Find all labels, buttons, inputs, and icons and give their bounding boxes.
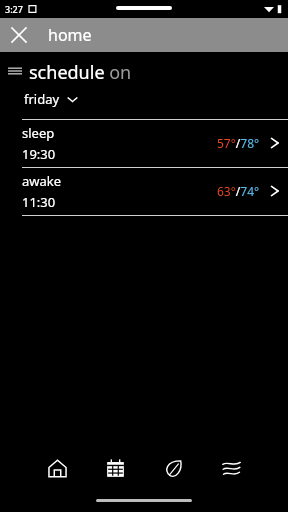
button[interactable]: Schedule — [95, 448, 135, 488]
button[interactable]: Eco — [153, 448, 193, 488]
staticText: 19:30 — [22, 145, 56, 163]
staticText: 11:30 — [22, 193, 56, 211]
button[interactable]: sleep — [0, 120, 288, 167]
button[interactable]: friday — [22, 88, 80, 110]
staticText: 3:27 — [5, 3, 23, 15]
button[interactable]: awake — [0, 168, 288, 215]
button[interactable]: Home — [37, 448, 77, 488]
staticText: friday — [24, 90, 60, 108]
staticText: 57°/78° — [217, 135, 260, 151]
staticText: home — [48, 24, 92, 46]
staticText: 63°/74° — [217, 183, 260, 199]
staticText: awake — [22, 172, 62, 190]
staticText: sleep — [22, 124, 55, 142]
button[interactable]: Fan — [211, 448, 251, 488]
staticText: schedule on — [29, 60, 132, 82]
button[interactable]: Close — [4, 20, 34, 50]
